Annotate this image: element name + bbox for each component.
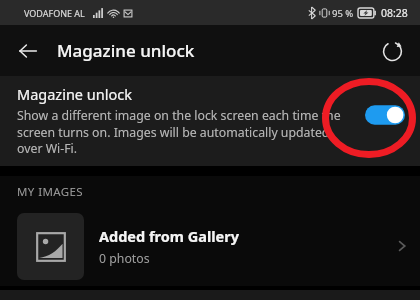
staticText: 08:28 [381,6,408,20]
button[interactable]: Magazine unlock toggle, on [365,104,405,126]
button[interactable]: Refresh [372,31,412,71]
staticText: MY IMAGES [17,184,84,200]
staticText: 0 photos [99,250,150,267]
staticText: Added from Gallery [99,226,239,246]
staticText: Show a different image on the lock scree… [17,107,342,156]
staticText: Magazine unlock [17,84,132,104]
button[interactable]: Added from Gallery [0,206,420,286]
staticText: Magazine unlock [57,39,195,62]
button[interactable]: Back [8,31,48,71]
button[interactable]: Magazine unlock [0,76,420,166]
staticText: VODAFONE AL [24,7,85,19]
staticText: 95 % [332,7,354,20]
